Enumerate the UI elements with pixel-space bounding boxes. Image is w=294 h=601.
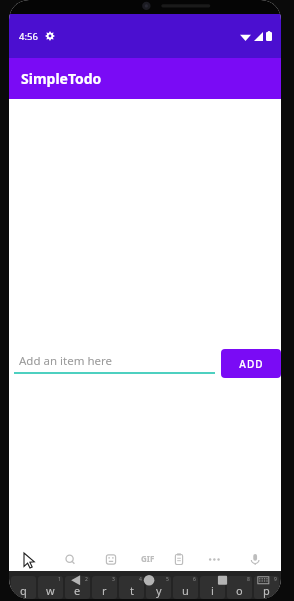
staticText: 8 [247,576,250,583]
staticText: u [182,583,189,598]
button[interactable]: e [65,576,90,599]
staticText: 9 [274,576,277,583]
staticText: 5 [166,576,169,583]
button[interactable]: p [254,576,279,599]
staticText: o [236,583,243,598]
button[interactable]: SimpleTodo [9,58,281,99]
staticText: p [263,583,270,598]
staticText: 3 [112,576,115,583]
button[interactable]: ADD [221,349,281,378]
staticText: 4 [139,576,142,583]
staticText: 6 [193,576,196,583]
staticText: q [20,583,27,598]
staticText: e [74,583,81,598]
staticText: ADD [239,357,264,371]
staticText: SimpleTodo [21,69,102,88]
button[interactable]: q [11,576,36,599]
button[interactable]: r [92,576,117,599]
button[interactable]: Add an item here [14,353,215,374]
staticText: r [102,583,107,598]
staticText: t [130,583,134,598]
button[interactable]: y [146,576,171,599]
button[interactable]: i [200,576,225,599]
staticText: 1 [58,576,61,583]
staticText: GIF [141,553,281,564]
staticText: 2 [85,576,88,583]
staticText: 4:56 [19,30,38,43]
staticText: i [211,583,214,598]
button[interactable]: t [119,576,144,599]
staticText: w [46,583,55,598]
staticText: y [156,583,162,598]
other: Settings [45,31,55,41]
staticText: Add an item here [19,353,112,369]
button[interactable]: w [38,576,63,599]
button[interactable]: o [227,576,252,599]
button[interactable]: u [173,576,198,599]
